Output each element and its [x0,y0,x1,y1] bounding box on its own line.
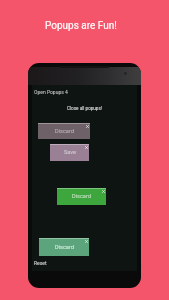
button[interactable]: Discard [39,238,89,256]
button[interactable]: Discard [38,123,90,139]
button[interactable]: Close [86,125,89,128]
button[interactable]: Close [102,190,105,193]
staticText: Discard [55,128,74,135]
staticText: Discard [72,193,91,200]
button[interactable]: Save [50,144,89,161]
staticText: Popups are Fun! [45,20,117,32]
button[interactable]: Close [85,240,88,243]
staticText: Close all popups! [32,106,137,111]
button[interactable]: Open Popups 4 [34,89,68,95]
staticText: Discard [55,244,74,251]
button[interactable]: Reset [34,260,47,266]
button[interactable]: Discard [57,188,106,205]
button[interactable]: Close [85,146,88,149]
staticText: Save [64,149,76,156]
